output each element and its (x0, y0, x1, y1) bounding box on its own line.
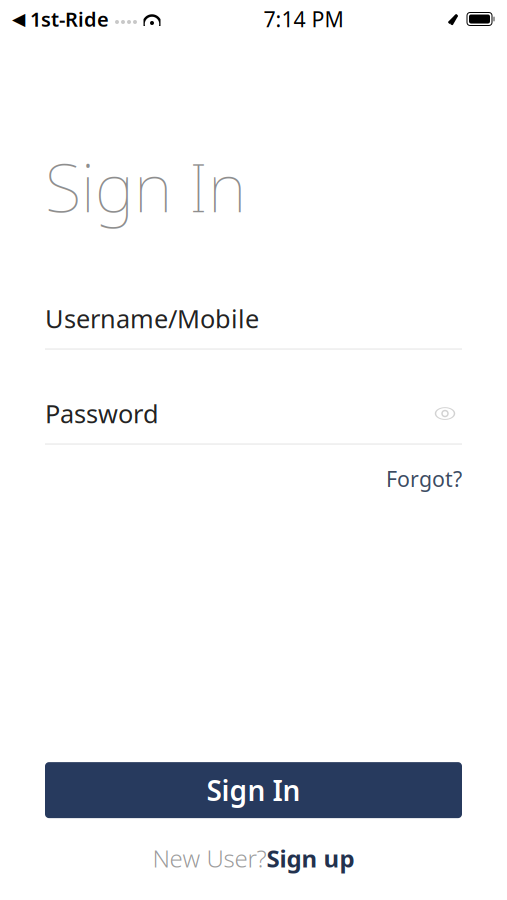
staticText: 7:14 PM (263, 5, 343, 33)
staticText: New User? (152, 842, 266, 874)
button[interactable]: Forgot? (386, 464, 462, 493)
button[interactable]: New User? (152, 842, 354, 874)
staticText: ◀ (12, 9, 25, 29)
button[interactable]: Show password (428, 400, 462, 426)
staticText: Sign In (206, 771, 300, 809)
staticText: Sign In (45, 142, 246, 230)
staticText: Forgot? (386, 464, 462, 493)
button[interactable]: Sign In (45, 762, 462, 818)
staticText: Username/Mobile (45, 302, 259, 335)
staticText: 1st-Ride (25, 6, 109, 32)
staticText: Sign up (266, 842, 354, 874)
staticText: Password (45, 397, 159, 430)
